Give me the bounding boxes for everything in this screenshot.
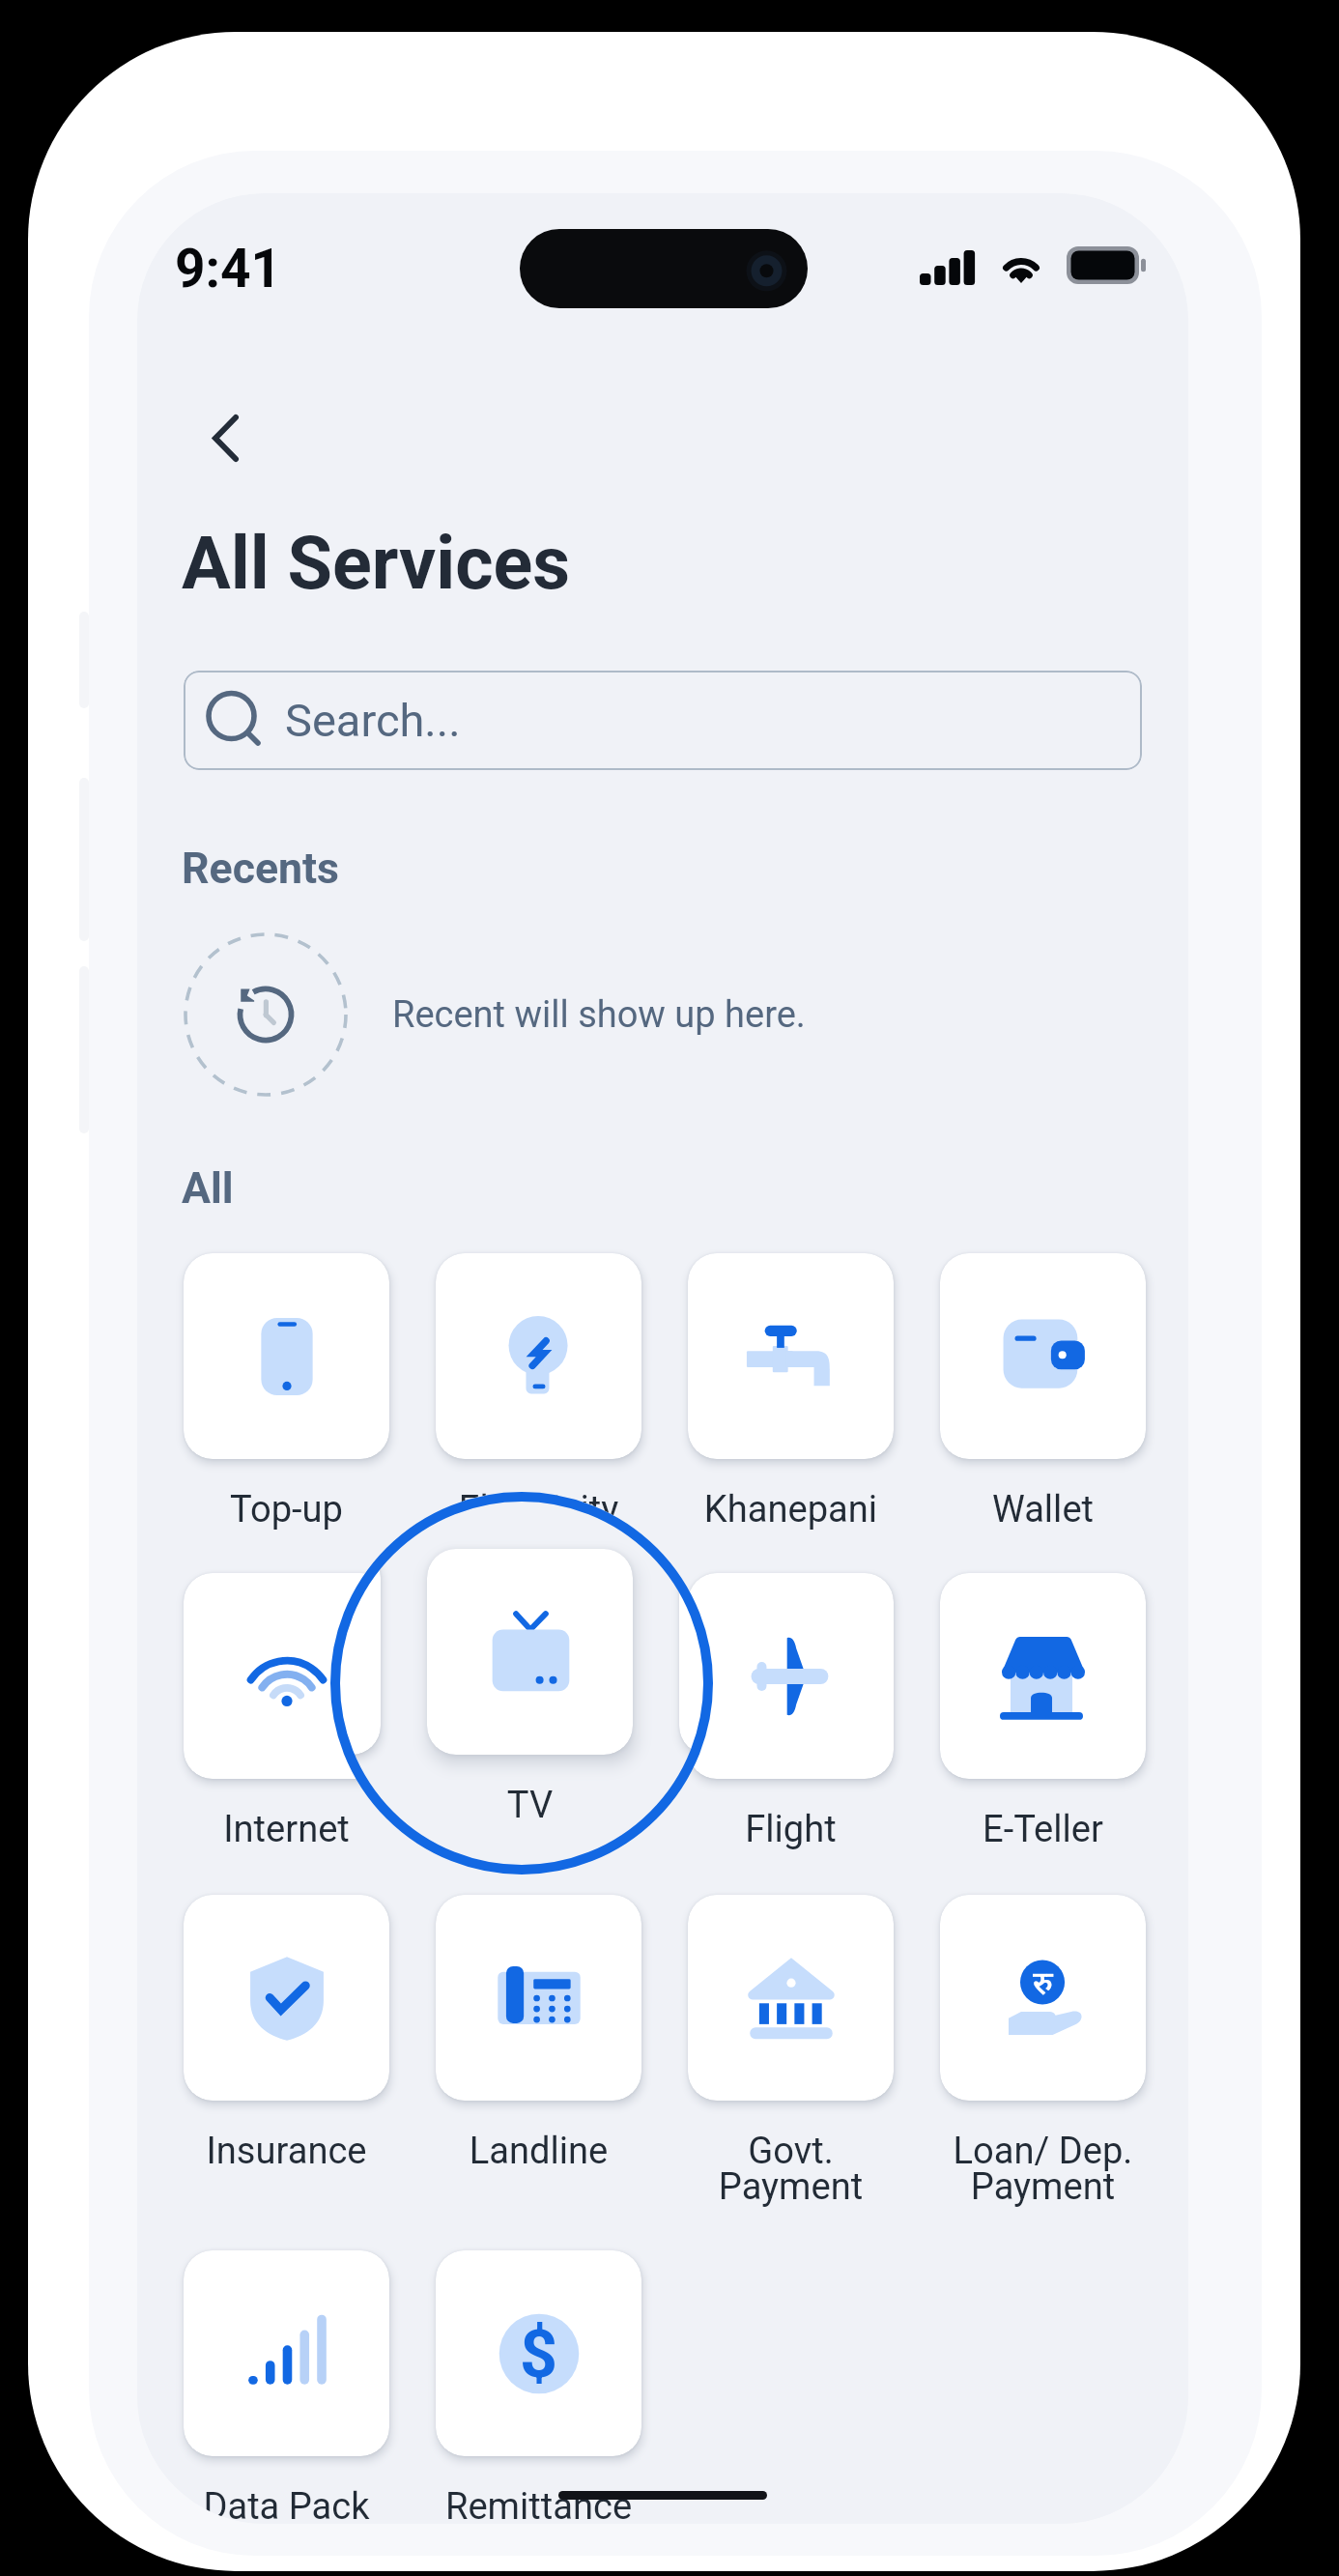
staticText: Landline xyxy=(397,2130,680,2173)
button[interactable]: रु xyxy=(940,1895,1146,2101)
staticText: TV xyxy=(388,1784,671,1827)
staticText: Recent will show up here. xyxy=(392,993,806,1037)
button[interactable] xyxy=(940,1573,1146,1779)
staticText: Electricity xyxy=(397,1488,680,1531)
button[interactable]: Search... xyxy=(184,671,1142,770)
staticText: All xyxy=(182,1163,234,1214)
button[interactable] xyxy=(184,2250,389,2456)
button[interactable] xyxy=(688,1573,894,1779)
staticText: 9:41 xyxy=(175,238,282,300)
staticText: $ xyxy=(520,2316,558,2393)
staticText: Remittance xyxy=(397,2485,680,2524)
staticText: Khanepani xyxy=(649,1488,932,1531)
staticText: रु xyxy=(1033,1960,1053,2004)
staticText: Flight xyxy=(649,1808,932,1851)
button[interactable] xyxy=(184,1253,389,1459)
staticText: E-Teller xyxy=(901,1808,1184,1851)
staticText: All Services xyxy=(182,521,571,606)
staticText: Wallet xyxy=(901,1488,1184,1531)
staticText: Insurance xyxy=(145,2130,428,2173)
staticText: Govt. Payment xyxy=(649,2130,932,2208)
button[interactable] xyxy=(184,1895,389,2101)
button[interactable] xyxy=(940,1253,1146,1459)
button[interactable] xyxy=(688,1895,894,2101)
staticText: Recents xyxy=(182,844,339,894)
button[interactable] xyxy=(688,1253,894,1459)
button[interactable]: $ xyxy=(436,2250,641,2456)
staticText: Data Pack xyxy=(145,2485,428,2524)
staticText: Loan/ Dep. Payment xyxy=(901,2130,1184,2208)
button[interactable] xyxy=(184,1573,389,1779)
button[interactable]: Back xyxy=(172,385,278,491)
staticText: Top-up xyxy=(145,1488,428,1531)
button[interactable] xyxy=(436,1895,641,2101)
button[interactable] xyxy=(436,1253,641,1459)
staticText: Search... xyxy=(285,694,461,747)
staticText: Internet xyxy=(145,1808,428,1851)
